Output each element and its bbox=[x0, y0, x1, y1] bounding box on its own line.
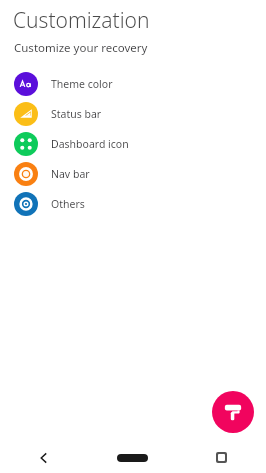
button[interactable]: Nav bar bbox=[0, 159, 266, 189]
staticText: Theme color bbox=[51, 77, 113, 91]
button[interactable]: Back bbox=[0, 442, 88, 473]
staticText: Status bar bbox=[51, 107, 102, 121]
staticText: Customize your recovery bbox=[14, 40, 148, 56]
button[interactable]: Theme color bbox=[0, 69, 266, 99]
button[interactable]: Dashboard icon bbox=[0, 129, 266, 159]
staticText: Others bbox=[51, 197, 85, 211]
staticText: Customization bbox=[13, 6, 150, 35]
staticText: Nav bar bbox=[51, 167, 90, 181]
button[interactable]: Status bar bbox=[0, 99, 266, 129]
staticText: Dashboard icon bbox=[51, 137, 129, 151]
button[interactable]: Home bbox=[88, 442, 177, 473]
button[interactable]: Apply theme bbox=[212, 391, 254, 433]
button[interactable]: Others bbox=[0, 189, 266, 219]
button[interactable]: Recent apps bbox=[177, 442, 266, 473]
